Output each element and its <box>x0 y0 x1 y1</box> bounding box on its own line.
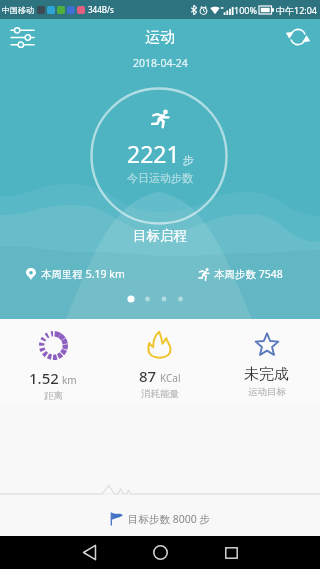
button[interactable]: Back <box>62 536 116 569</box>
button[interactable]: Sync <box>276 19 320 55</box>
staticText: 本周步数 7548 <box>214 267 283 281</box>
button[interactable]: 1.52 <box>0 331 106 402</box>
staticText: 今日运动步数 <box>127 171 193 185</box>
staticText: 中国移动 <box>2 5 34 15</box>
button[interactable]: 目标步数 8000 步 <box>0 502 320 536</box>
button[interactable]: Filter settings <box>0 19 44 55</box>
button[interactable]: 87 <box>106 331 213 400</box>
staticText: 2221 <box>127 138 180 169</box>
staticText: 未完成 <box>244 365 289 384</box>
staticText: KCal <box>160 371 181 385</box>
button[interactable]: 未完成 <box>213 331 320 398</box>
staticText: 消耗能量 <box>141 388 179 400</box>
staticText: 距离 <box>44 390 63 402</box>
staticText: 中午12:04 <box>276 4 318 16</box>
staticText: 1.52 <box>29 368 59 388</box>
staticText: km <box>62 373 77 387</box>
staticText: 目标步数 8000 步 <box>128 512 210 526</box>
staticText: 运动 <box>145 28 175 47</box>
staticText: 344B/s <box>88 4 114 15</box>
staticText: 100% <box>234 4 257 16</box>
staticText: 运动目标 <box>248 386 286 398</box>
staticText: 87 <box>139 366 157 386</box>
staticText: 步 <box>183 153 194 167</box>
staticText: 本周里程 5.19 km <box>41 267 125 281</box>
button[interactable]: Recent apps <box>204 536 258 569</box>
staticText: 目标启程 <box>133 227 187 244</box>
staticText: 2018-04-24 <box>133 56 188 70</box>
button[interactable]: Home <box>133 536 187 569</box>
